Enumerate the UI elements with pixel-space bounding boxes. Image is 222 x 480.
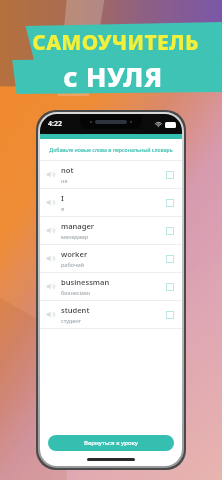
- button[interactable]: Add student to dictionary: [164, 309, 176, 321]
- staticText: с НУЛЯ: [63, 58, 163, 95]
- staticText: не: [61, 177, 68, 184]
- button[interactable]: Play pronunciation: [46, 310, 55, 319]
- button[interactable]: Add businessman to dictionary: [164, 281, 176, 293]
- button[interactable]: Play pronunciation: [40, 273, 182, 300]
- staticText: manager: [61, 221, 95, 231]
- button[interactable]: Play pronunciation: [46, 254, 55, 263]
- staticText: not: [61, 165, 74, 175]
- button[interactable]: Play pronunciation: [40, 189, 182, 216]
- staticText: студент: [61, 317, 82, 324]
- button[interactable]: Add I to dictionary: [164, 197, 176, 209]
- staticText: I: [61, 193, 64, 203]
- button[interactable]: Play pronunciation: [46, 282, 55, 291]
- button[interactable]: Play pronunciation: [46, 170, 55, 179]
- button[interactable]: Play pronunciation: [40, 161, 182, 188]
- staticText: student: [61, 305, 90, 315]
- staticText: businessman: [61, 277, 110, 287]
- staticText: бизнесмен: [61, 289, 91, 296]
- staticText: менеджер: [61, 233, 89, 240]
- staticText: 4:22: [48, 119, 62, 129]
- button[interactable]: Play pronunciation: [40, 245, 182, 272]
- button[interactable]: Play pronunciation: [40, 217, 182, 244]
- button[interactable]: Вернуться к уроку: [48, 435, 174, 451]
- staticText: я: [61, 205, 65, 212]
- button[interactable]: Play pronunciation: [40, 301, 182, 328]
- button[interactable]: Play pronunciation: [46, 198, 55, 207]
- staticText: рабочий: [61, 261, 84, 268]
- staticText: САМОУЧИТЕЛЬ: [32, 28, 199, 57]
- button[interactable]: Add not to dictionary: [164, 169, 176, 181]
- button[interactable]: Play pronunciation: [46, 226, 55, 235]
- staticText: Вернуться к уроку: [84, 439, 139, 447]
- staticText: Добавьте новые слова в персональный слов…: [46, 146, 176, 153]
- button[interactable]: Add manager to dictionary: [164, 225, 176, 237]
- staticText: worker: [61, 249, 88, 259]
- button[interactable]: Add worker to dictionary: [164, 253, 176, 265]
